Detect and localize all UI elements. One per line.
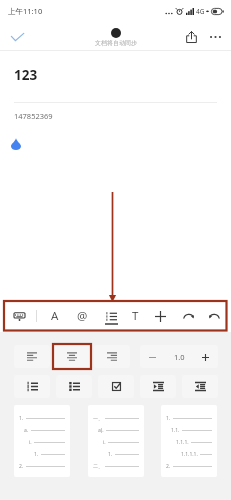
staticText: 2. <box>19 463 24 470</box>
staticText: 1. <box>19 415 24 422</box>
button[interactable]: Share <box>179 24 203 50</box>
staticText: 1. <box>108 451 113 458</box>
staticText: 一、 <box>93 415 103 421</box>
button[interactable]: Keyboard <box>8 303 30 329</box>
button[interactable]: Undo <box>177 303 199 329</box>
staticText: T <box>132 308 139 324</box>
staticText: a). <box>98 427 104 434</box>
staticText: 1.1. <box>171 427 180 434</box>
staticText: 1.1.1. <box>176 439 189 446</box>
button[interactable] <box>98 375 134 398</box>
staticText: 文档将自动同步 <box>95 39 137 47</box>
staticText: A <box>51 308 59 324</box>
button[interactable]: Text size <box>124 303 146 329</box>
staticText: 二、 <box>93 463 103 469</box>
button[interactable]: More options <box>203 24 227 50</box>
button[interactable] <box>94 345 130 368</box>
staticText: 147852369 <box>14 111 53 121</box>
staticText: 1. <box>166 415 171 422</box>
staticText: a. <box>24 427 29 434</box>
button[interactable]: List format <box>100 303 122 329</box>
button[interactable]: Redo <box>203 303 225 329</box>
staticText: 1. <box>34 451 39 458</box>
button[interactable] <box>182 375 218 398</box>
staticText: @ <box>77 308 88 324</box>
button[interactable]: 1. <box>14 405 70 477</box>
button[interactable]: Mention <box>71 303 93 329</box>
button[interactable] <box>140 375 176 398</box>
staticText: 123 <box>14 66 38 84</box>
button[interactable] <box>14 345 50 368</box>
button[interactable]: 1. <box>161 405 217 477</box>
staticText: 2. <box>166 463 171 470</box>
button[interactable]: Font style <box>44 303 66 329</box>
button[interactable]: Done <box>0 22 34 51</box>
staticText: i. <box>29 439 32 446</box>
button[interactable] <box>54 345 90 368</box>
staticText: 上午11:10 <box>8 6 43 16</box>
button[interactable] <box>56 375 92 398</box>
staticText: 1.0 <box>174 352 185 362</box>
button[interactable]: 1.0 <box>140 345 218 368</box>
staticText: 4G <box>196 7 205 16</box>
button[interactable]: 一、 <box>88 405 144 477</box>
button[interactable]: Insert <box>149 303 171 329</box>
staticText: i. <box>103 439 106 446</box>
staticText: 1.1.1.1. <box>181 451 198 458</box>
button[interactable] <box>14 375 50 398</box>
